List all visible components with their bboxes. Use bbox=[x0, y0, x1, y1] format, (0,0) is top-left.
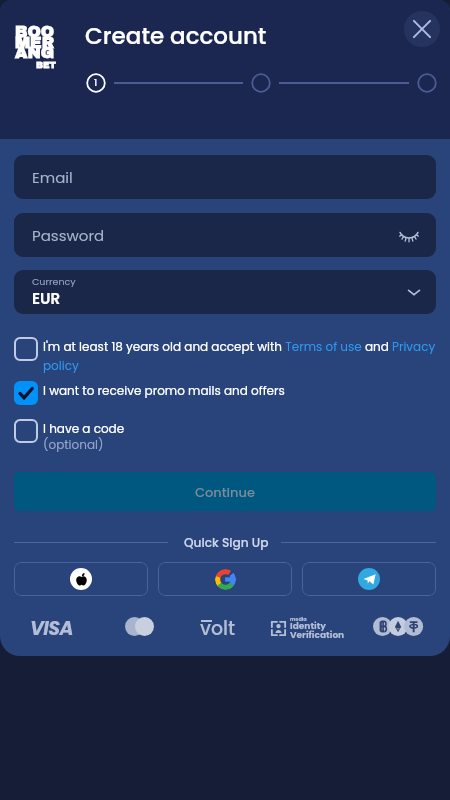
button[interactable]: Sign in with Google bbox=[158, 562, 292, 596]
staticText: 1 bbox=[94, 77, 98, 90]
staticText: Verification bbox=[290, 629, 345, 642]
staticText: Identity bbox=[290, 620, 327, 633]
staticText: Email bbox=[32, 167, 73, 188]
staticText: media bbox=[290, 616, 307, 623]
staticText: I have a code bbox=[43, 420, 125, 437]
staticText: EUR bbox=[32, 288, 61, 309]
staticText: Continue bbox=[195, 483, 255, 501]
staticText: MER bbox=[15, 34, 55, 51]
button[interactable]: Continue bbox=[14, 472, 436, 511]
button[interactable]: I have a code bbox=[14, 419, 436, 453]
staticText: Quick Sign Up bbox=[184, 534, 269, 550]
button[interactable]: Sign in with Apple bbox=[14, 562, 148, 596]
button[interactable]: I want to receive promo mails and offers bbox=[14, 381, 436, 405]
staticText: Currency bbox=[32, 275, 76, 288]
staticText: BET bbox=[36, 60, 56, 70]
staticText: volt bbox=[200, 615, 236, 639]
button[interactable]: Email bbox=[14, 155, 436, 199]
button[interactable]: Show password bbox=[396, 222, 422, 248]
staticText: VISA bbox=[30, 615, 73, 639]
staticText: Password bbox=[32, 225, 105, 246]
button[interactable]: Sign in with Telegram bbox=[302, 562, 436, 596]
staticText: (optional) bbox=[43, 436, 104, 453]
button[interactable]: I'm at least 18 years old and accept wit… bbox=[14, 337, 436, 373]
staticText: I want to receive promo mails and offers bbox=[43, 382, 285, 399]
staticText: ANG bbox=[15, 44, 55, 61]
other: Select currency bbox=[406, 284, 422, 300]
staticText: Create account bbox=[85, 20, 267, 52]
button[interactable]: Password bbox=[14, 213, 436, 257]
staticText: I'm at least 18 years old and accept wit… bbox=[43, 338, 436, 374]
button[interactable]: Close bbox=[404, 11, 440, 47]
staticText: BOO bbox=[15, 23, 55, 40]
button[interactable]: Currency bbox=[14, 270, 436, 314]
